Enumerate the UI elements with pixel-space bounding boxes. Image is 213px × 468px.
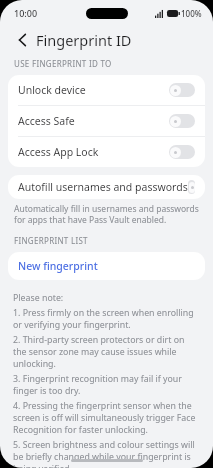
button[interactable]: Autofill usernames and passwords <box>8 175 205 199</box>
staticText: 1. Press firmly on the screen when enrol… <box>13 307 200 331</box>
staticText: 10:00 <box>14 7 38 19</box>
staticText: USE FINGERPRINT ID TO <box>14 58 112 69</box>
staticText: Automatically fill in usernames and pass… <box>14 203 199 225</box>
staticText: 3. Fingerprint recognition may fail if y… <box>13 373 200 397</box>
button[interactable]: Access App Lock <box>8 137 205 167</box>
staticText: 5. Screen brightness and colour settings… <box>13 439 200 468</box>
staticText: Autofill usernames and passwords <box>18 180 188 194</box>
button[interactable]: Toggle <box>169 145 195 159</box>
staticText: Unlock device <box>18 83 86 97</box>
staticText: 4. Pressing the fingerprint sensor when … <box>13 400 200 436</box>
button[interactable]: Toggle <box>169 83 195 97</box>
button[interactable]: Toggle <box>169 114 195 128</box>
staticText: 100% <box>181 8 202 19</box>
button[interactable]: Back <box>13 31 31 49</box>
button[interactable]: Access Safe <box>8 106 205 137</box>
staticText: Access App Lock <box>18 145 99 159</box>
staticText: Fingerprint ID <box>36 30 132 50</box>
staticText: 2. Third-party screen protectors or dirt… <box>13 334 200 370</box>
button[interactable]: New fingerprint <box>8 252 205 280</box>
staticText: FINGERPRINT LIST <box>14 235 88 246</box>
staticText: Access Safe <box>18 114 75 128</box>
button[interactable]: Unlock device <box>8 75 205 106</box>
staticText: Please note: <box>13 292 200 304</box>
button[interactable]: Toggle <box>188 180 195 194</box>
staticText: New fingerprint <box>18 259 98 273</box>
